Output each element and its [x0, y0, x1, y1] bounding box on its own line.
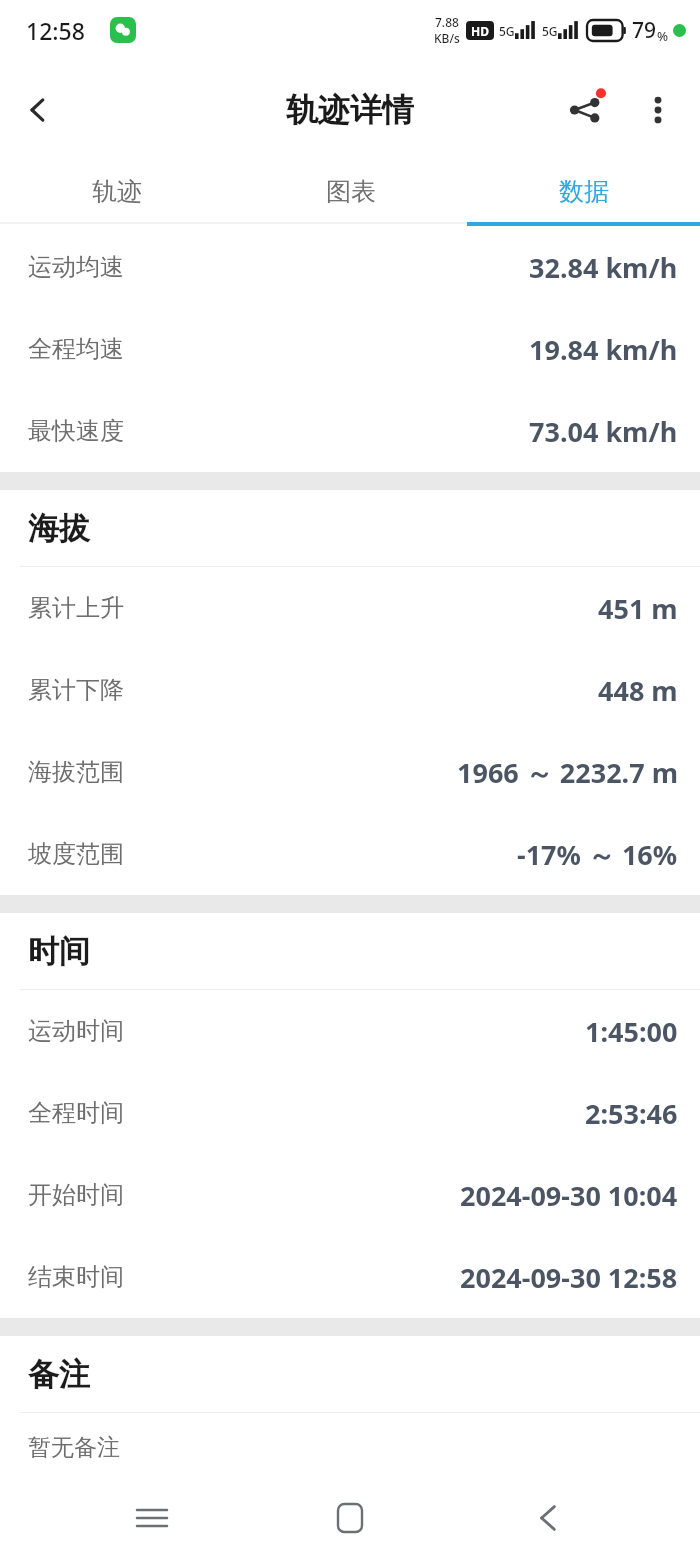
staticText: 32.84 km/h [529, 249, 678, 286]
staticText: 448 m [598, 672, 678, 709]
staticText: 全程均速 [28, 334, 124, 364]
staticText: -17% ～ 16% [517, 836, 678, 873]
staticText: 轨迹 [92, 176, 142, 207]
staticText: 海拔 [28, 509, 90, 548]
staticText: 1966 ～ 2232.7 m [457, 754, 678, 791]
staticText: 79 [632, 16, 657, 45]
staticText: 开始时间 [28, 1180, 124, 1210]
staticText: 1:45:00 [585, 1013, 678, 1050]
staticText: 5G [542, 23, 558, 39]
staticText: 时间 [28, 932, 90, 971]
staticText: % [657, 27, 669, 45]
staticText: 图表 [326, 176, 376, 207]
button[interactable]: 全程均速 [0, 308, 700, 390]
button[interactable]: 全程时间 [0, 1072, 700, 1154]
staticText: 运动时间 [28, 1016, 124, 1046]
button[interactable]: Home [318, 1486, 382, 1550]
button[interactable]: 轨迹 [0, 160, 234, 222]
staticText: 12:58 [26, 15, 85, 46]
staticText: 海拔范围 [28, 757, 124, 787]
staticText: 暂无备注 [28, 1433, 120, 1462]
staticText: 2024-09-30 12:58 [460, 1259, 678, 1296]
staticText: 2:53:46 [585, 1095, 678, 1132]
staticText: 轨迹详情 [286, 90, 414, 130]
staticText: 2024-09-30 10:04 [460, 1177, 678, 1214]
button[interactable]: More options [622, 74, 694, 146]
button[interactable]: 运动时间 [0, 990, 700, 1072]
staticText: 累计上升 [28, 593, 124, 623]
staticText: 全程时间 [28, 1098, 124, 1128]
staticText: 7.88 [435, 14, 459, 30]
staticText: 数据 [559, 176, 609, 207]
staticText: 运动均速 [28, 252, 124, 282]
staticText: 坡度范围 [28, 839, 124, 869]
staticText: 结束时间 [28, 1262, 124, 1292]
button[interactable]: 累计下降 [0, 649, 700, 731]
button[interactable]: 海拔范围 [0, 731, 700, 813]
staticText: 最快速度 [28, 416, 124, 446]
staticText: 451 m [598, 590, 678, 627]
button[interactable]: Share [550, 74, 622, 146]
staticText: 5G [499, 23, 515, 39]
staticText: 73.04 km/h [529, 413, 678, 450]
button[interactable]: 开始时间 [0, 1154, 700, 1236]
button[interactable]: 数据 [467, 160, 700, 222]
button[interactable]: 运动均速 [0, 226, 700, 308]
button[interactable]: 结束时间 [0, 1236, 700, 1318]
staticText: 备注 [28, 1355, 90, 1394]
staticText: KB/s [434, 30, 460, 46]
button[interactable]: 坡度范围 [0, 813, 700, 895]
staticText: 累计下降 [28, 675, 124, 705]
button[interactable]: Recent apps [120, 1486, 184, 1550]
button[interactable]: 图表 [234, 160, 467, 222]
button[interactable]: Back [516, 1486, 580, 1550]
staticText: 19.84 km/h [529, 331, 678, 368]
button[interactable]: Back [0, 72, 76, 148]
button[interactable]: 累计上升 [0, 567, 700, 649]
button[interactable]: 最快速度 [0, 390, 700, 472]
staticText: HD [471, 23, 489, 39]
